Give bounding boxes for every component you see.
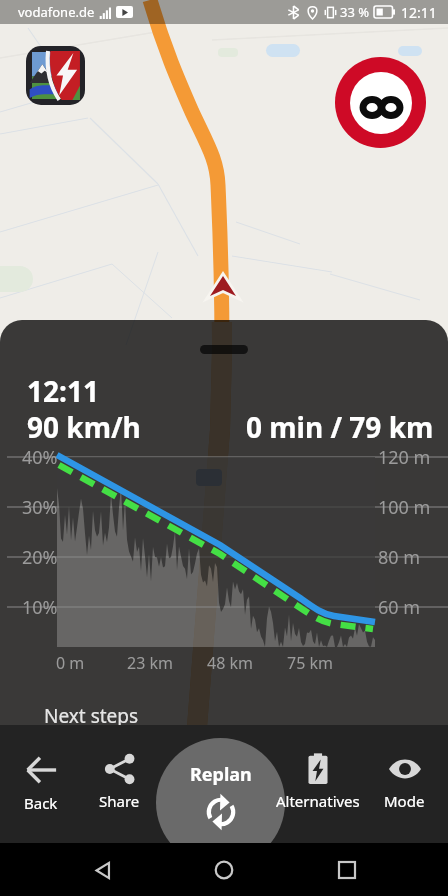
staticText: Share bbox=[99, 791, 140, 811]
staticText: 12:11 bbox=[27, 372, 99, 410]
button[interactable]: Replan bbox=[156, 738, 285, 867]
staticText: 0 min / 79 km bbox=[246, 408, 434, 446]
staticText: 120 m bbox=[378, 445, 431, 470]
staticText: 48 km bbox=[207, 652, 253, 674]
staticText: 90 km/h bbox=[27, 408, 141, 446]
button[interactable]: Share bbox=[64, 725, 174, 843]
staticText: 80 m bbox=[378, 545, 421, 570]
button[interactable]: App bbox=[26, 46, 85, 105]
staticText: 75 km bbox=[287, 652, 333, 674]
button[interactable]: Speed limit bbox=[335, 57, 426, 148]
staticText: 20% bbox=[22, 545, 58, 570]
staticText: Replan bbox=[190, 762, 252, 787]
staticText: 40% bbox=[22, 445, 58, 470]
staticText: 60 m bbox=[378, 595, 421, 620]
staticText: vodafone.de bbox=[18, 3, 95, 21]
button[interactable]: Recents bbox=[326, 849, 368, 891]
staticText: Next steps bbox=[44, 703, 139, 729]
button[interactable]: Back bbox=[81, 849, 123, 891]
staticText: 0 m bbox=[56, 652, 85, 674]
staticText: 12:11 bbox=[401, 3, 437, 22]
button[interactable]: Alternatives bbox=[263, 725, 373, 843]
button[interactable]: Back bbox=[0, 725, 96, 843]
staticText: 33 % bbox=[340, 3, 370, 21]
staticText: Mode bbox=[384, 791, 425, 811]
staticText: Alternatives bbox=[276, 791, 360, 811]
staticText: 10% bbox=[22, 595, 58, 620]
staticText: 23 km bbox=[127, 652, 173, 674]
button[interactable]: Mode bbox=[349, 725, 448, 843]
staticText: 100 m bbox=[378, 495, 431, 520]
staticText: 30% bbox=[22, 495, 58, 520]
staticText: Back bbox=[24, 793, 58, 813]
button[interactable]: Home bbox=[203, 849, 245, 891]
